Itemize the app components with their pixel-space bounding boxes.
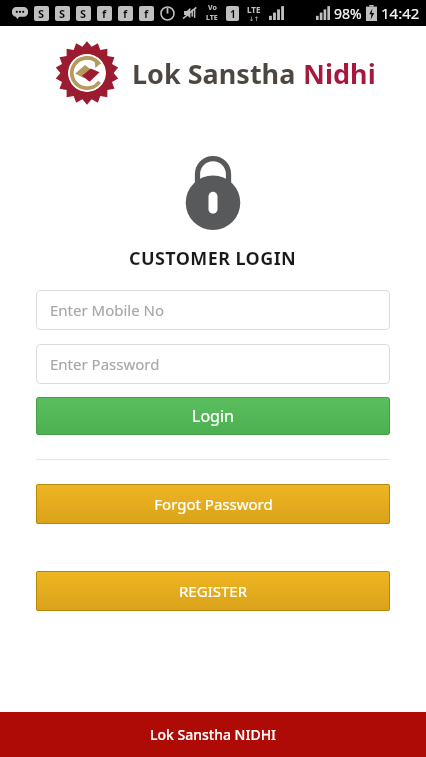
staticText: S — [80, 6, 87, 21]
staticText: S — [38, 6, 45, 21]
staticText: REGISTER — [179, 581, 247, 601]
staticText: S — [59, 6, 66, 21]
staticText: Lok Sanstha NIDHI — [150, 725, 277, 744]
staticText: CUSTOMER LOGIN — [129, 246, 297, 271]
staticText: 14:42 — [381, 3, 420, 23]
staticText: LTE — [206, 13, 218, 23]
staticText: Enter Mobile No — [50, 300, 165, 320]
button[interactable]: Forgot Password — [36, 484, 390, 524]
staticText: Enter Password — [50, 354, 160, 374]
staticText: ↓↑ — [249, 15, 260, 22]
staticText: f — [102, 6, 107, 21]
staticText: Nidhi — [303, 55, 376, 92]
staticText: Login — [192, 405, 234, 427]
button[interactable]: Enter Mobile No — [36, 290, 390, 330]
staticText: f — [123, 6, 128, 21]
staticText: Vo — [208, 3, 217, 13]
staticText: f — [144, 6, 149, 21]
staticText: Forgot Password — [154, 494, 273, 514]
button[interactable]: Login — [36, 397, 390, 435]
staticText: LTE — [247, 4, 261, 15]
staticText: Lok Sanstha — [132, 55, 303, 92]
button[interactable]: REGISTER — [36, 571, 390, 611]
button[interactable]: Enter Password — [36, 344, 390, 384]
staticText: 1 — [230, 7, 236, 21]
button[interactable]: Lok Sanstha NIDHI — [0, 712, 426, 757]
staticText: 98% — [334, 4, 362, 23]
